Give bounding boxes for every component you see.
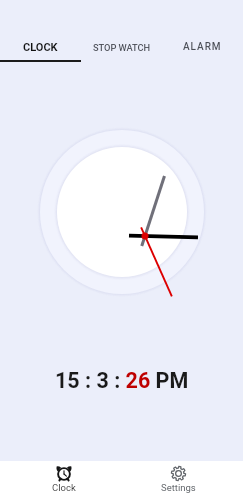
staticText: STOP WATCH — [93, 42, 151, 53]
staticText: Clock — [52, 482, 76, 493]
button[interactable]: Settings — [138, 461, 218, 500]
staticText: 15 : 3 : 26 PM — [55, 368, 189, 393]
staticText: Settings — [161, 482, 196, 493]
button[interactable]: Clock — [24, 461, 104, 500]
button[interactable]: CLOCK — [0, 16, 81, 78]
button[interactable]: ALARM — [162, 16, 243, 78]
button[interactable]: STOP WATCH — [81, 16, 162, 78]
staticText: CLOCK — [23, 41, 58, 54]
staticText: ALARM — [183, 41, 222, 53]
